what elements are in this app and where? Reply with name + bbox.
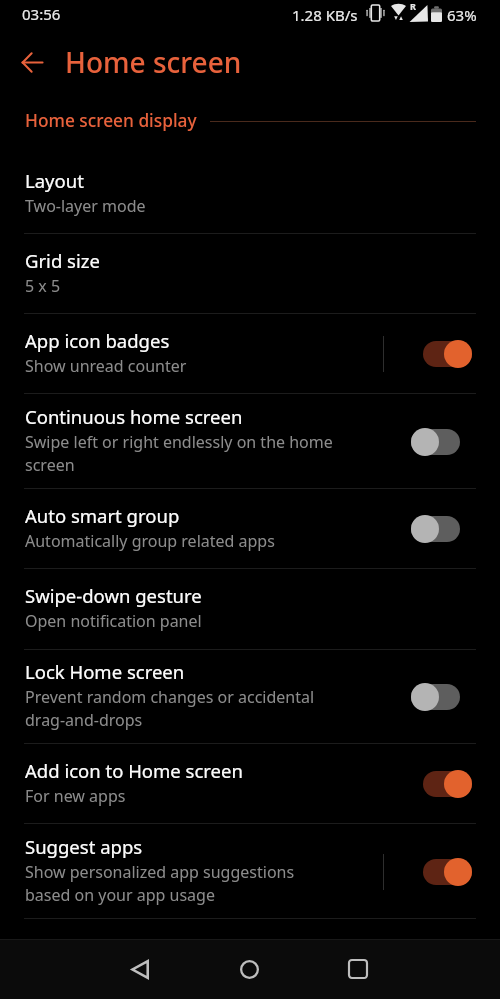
staticText: Prevent random changes or accidental dra… (25, 686, 330, 731)
button[interactable]: App icon badges (0, 314, 500, 394)
staticText: Two-layer mode (25, 195, 146, 217)
button[interactable]: Add icon to Home screen (0, 744, 500, 824)
button[interactable]: Continuous home screen (0, 394, 500, 489)
staticText: Continuous home screen (25, 404, 243, 429)
button[interactable] (411, 337, 472, 371)
staticText: 5 x 5 (25, 275, 61, 297)
staticText: Automatically group related apps (25, 530, 275, 552)
button[interactable] (411, 767, 472, 801)
button[interactable]: Back (10, 40, 54, 84)
staticText: Home screen (65, 43, 242, 81)
button[interactable] (411, 855, 472, 889)
button[interactable]: Swipe-down gesture (0, 569, 500, 650)
staticText: Suggest apps (25, 834, 143, 859)
staticText: Layout (25, 168, 84, 193)
button[interactable] (411, 512, 472, 546)
button[interactable]: Recents (332, 943, 384, 995)
button[interactable]: Auto smart group (0, 489, 500, 569)
staticText: Show personalized app suggestions based … (25, 861, 325, 906)
button[interactable]: Home (223, 943, 275, 995)
button[interactable] (411, 680, 472, 714)
staticText: Lock Home screen (25, 659, 185, 684)
staticText: Grid size (25, 248, 100, 273)
staticText: Swipe left or right endlessly on the hom… (25, 431, 365, 476)
button[interactable]: Lock Home screen (0, 650, 500, 744)
staticText: 03:56 (22, 4, 61, 24)
staticText: 63% (447, 5, 477, 25)
staticText: App icon badges (25, 328, 170, 353)
staticText: Show unread counter (25, 355, 187, 377)
staticText: Home screen display (25, 109, 197, 133)
staticText: R (410, 0, 416, 12)
staticText: 1.28 KB/s (292, 5, 358, 25)
staticText: Add icon to Home screen (25, 758, 243, 783)
button[interactable]: Grid size (0, 234, 500, 314)
staticText: Open notification panel (25, 610, 202, 632)
button[interactable] (411, 425, 472, 459)
staticText: Auto smart group (25, 503, 180, 528)
button[interactable]: Layout (0, 154, 500, 234)
staticText: Swipe-down gesture (25, 583, 202, 608)
button[interactable]: Suggest apps (0, 824, 500, 919)
button[interactable]: Back (114, 943, 166, 995)
staticText: For new apps (25, 785, 126, 807)
